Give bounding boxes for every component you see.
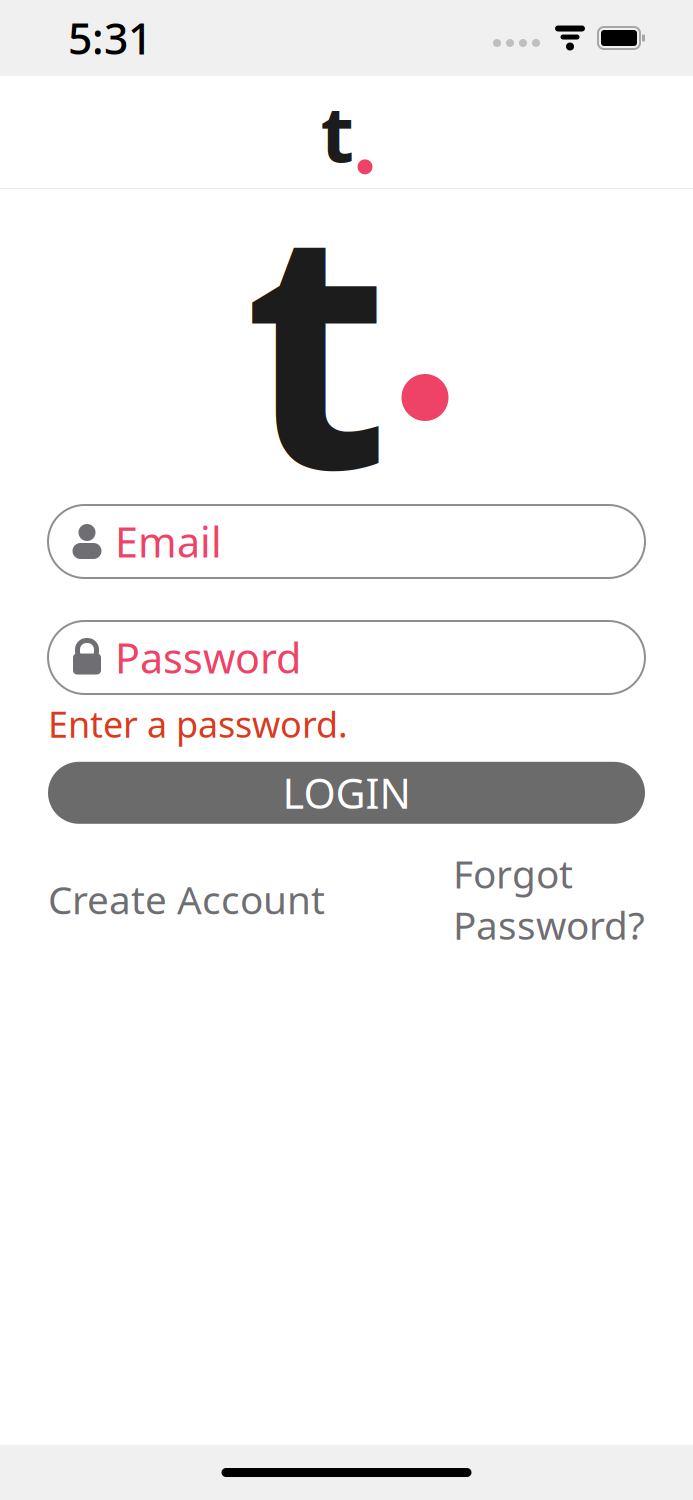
staticText: 5:31: [68, 10, 152, 66]
staticText: Enter a password.: [48, 700, 348, 748]
staticText: t: [320, 81, 354, 183]
button[interactable]: Create Account: [48, 873, 325, 925]
staticText: t: [244, 118, 389, 560]
button[interactable]: Forgot Password?: [453, 848, 645, 950]
staticText: Password: [115, 630, 301, 685]
staticText: Forgot Password?: [453, 848, 645, 950]
button[interactable]: LOGIN: [48, 762, 645, 824]
staticText: LOGIN: [282, 765, 410, 820]
staticText: Email: [115, 514, 222, 569]
staticText: Create Account: [48, 873, 325, 925]
